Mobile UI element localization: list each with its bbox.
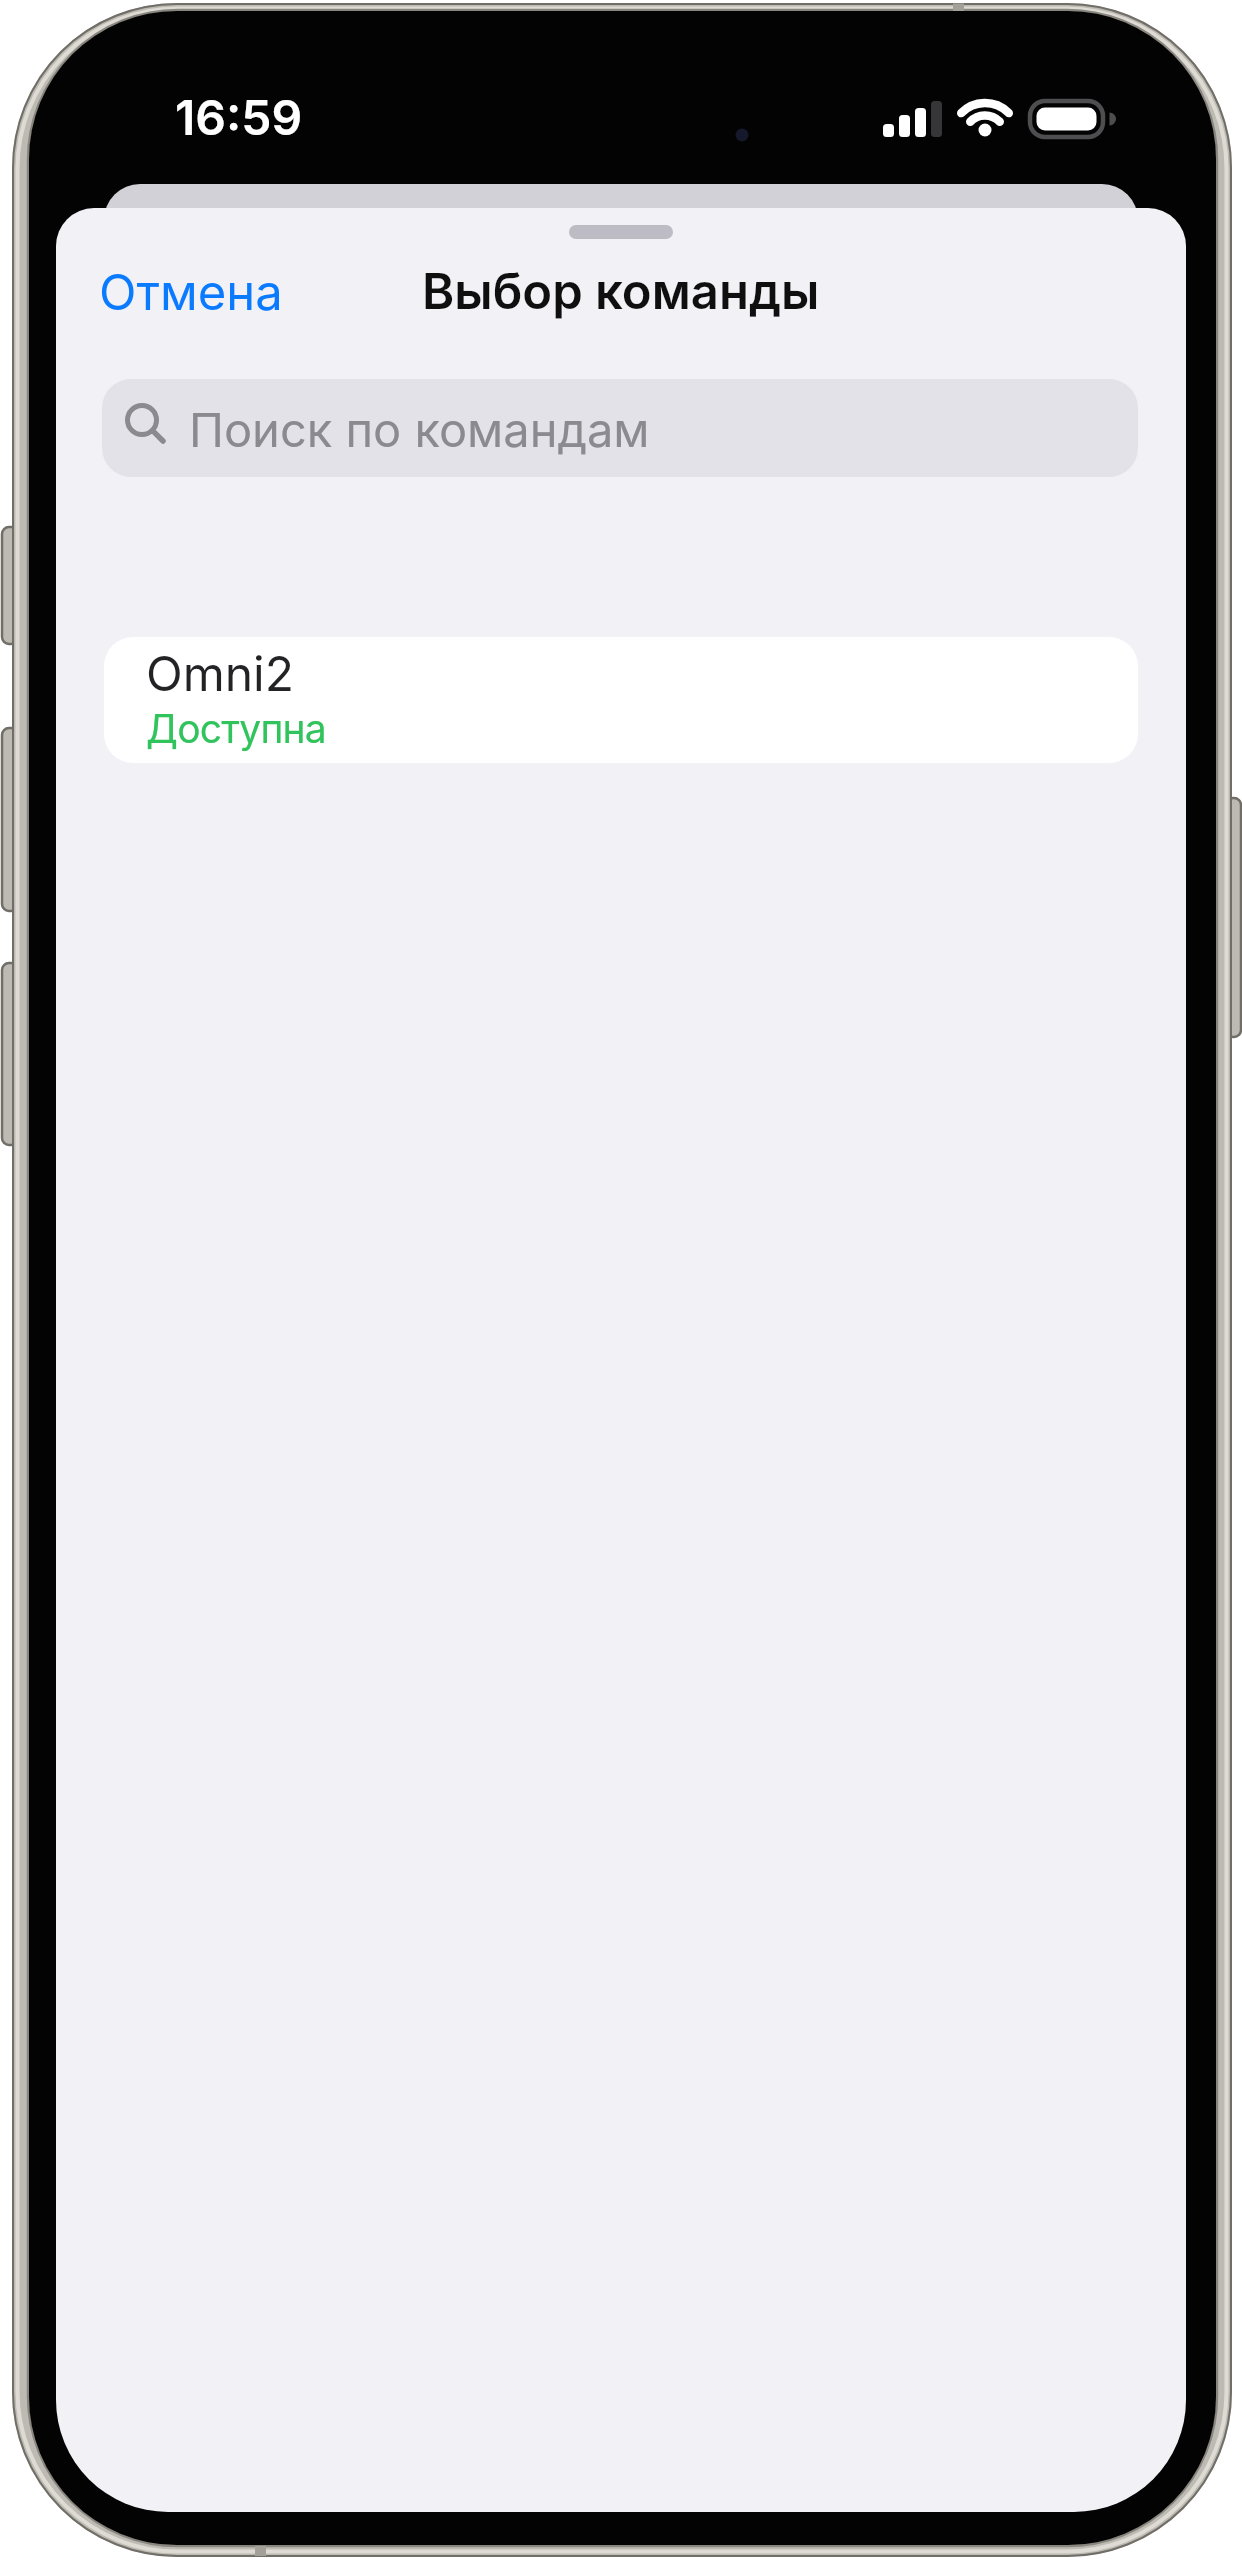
staticText: Поиск по командам <box>189 401 650 458</box>
staticText: Omni2 <box>146 644 295 702</box>
staticText: Доступна <box>146 705 326 752</box>
button[interactable]: Omni2 <box>104 637 1138 763</box>
staticText: Отмена <box>99 263 283 322</box>
button[interactable]: Поиск по командам <box>102 379 1138 477</box>
staticText: 16:59 <box>175 88 303 146</box>
staticText: Выбор команды <box>422 262 820 321</box>
button[interactable]: Отмена <box>89 253 273 312</box>
